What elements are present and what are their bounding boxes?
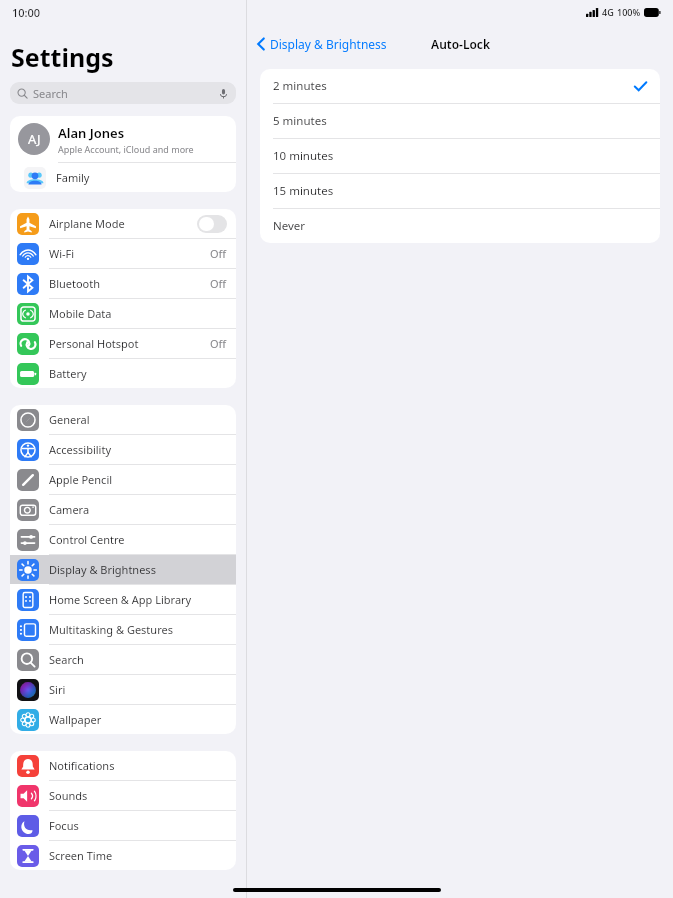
button[interactable]: Search	[10, 645, 236, 674]
button[interactable]: Notifications	[10, 751, 236, 780]
staticText: Apple Pencil	[49, 472, 113, 487]
button[interactable]: Personal Hotspot	[10, 329, 236, 358]
button[interactable]: Screen Time	[10, 841, 236, 870]
button[interactable]: AJ	[10, 116, 236, 162]
button[interactable]: Display & Brightness	[247, 32, 393, 56]
staticText: 4G	[602, 6, 614, 18]
button[interactable]: Focus	[10, 811, 236, 840]
button[interactable]: Siri	[10, 675, 236, 704]
staticText: Mobile Data	[49, 306, 112, 321]
staticText: Multitasking & Gestures	[49, 622, 173, 637]
staticText: Off	[210, 276, 227, 291]
button[interactable]: Home Screen & App Library	[10, 585, 236, 614]
button[interactable]: Airplane Mode	[10, 209, 236, 238]
staticText: Alan Jones	[58, 124, 125, 142]
button[interactable]: Mobile Data	[10, 299, 236, 328]
staticText: Wi-Fi	[49, 246, 75, 261]
button[interactable]: Multitasking & Gestures	[10, 615, 236, 644]
staticText: Siri	[49, 682, 66, 697]
staticText: Focus	[49, 818, 79, 833]
staticText: Camera	[49, 502, 90, 517]
staticText: Personal Hotspot	[49, 336, 139, 351]
button[interactable]: Sounds	[10, 781, 236, 810]
staticText: Battery	[49, 366, 87, 381]
staticText: General	[49, 412, 90, 427]
staticText: 15 minutes	[273, 183, 334, 199]
staticText: 100%	[617, 6, 641, 18]
button[interactable]: Display & Brightness	[10, 555, 236, 584]
staticText: AJ	[28, 130, 41, 148]
staticText: Settings	[11, 40, 114, 74]
button[interactable]: Control Centre	[10, 525, 236, 554]
button[interactable]: Wallpaper	[10, 705, 236, 734]
staticText: 10 minutes	[273, 148, 334, 164]
staticText: Search	[33, 86, 68, 101]
other: Voice search	[218, 88, 229, 99]
button[interactable]: Wi-Fi	[10, 239, 236, 268]
staticText: Home Screen & App Library	[49, 592, 192, 607]
button[interactable]: Camera	[10, 495, 236, 524]
staticText: Display & Brightness	[49, 562, 156, 577]
button[interactable]: 2 minutes	[260, 69, 660, 103]
button[interactable]: 5 minutes	[260, 104, 660, 138]
staticText: 10:00	[12, 5, 41, 20]
button[interactable]: General	[10, 405, 236, 434]
staticText: Control Centre	[49, 532, 125, 547]
button[interactable]: Apple Pencil	[10, 465, 236, 494]
staticText: Display & Brightness	[270, 36, 387, 52]
staticText: Accessibility	[49, 442, 112, 457]
button[interactable]: Battery	[10, 359, 236, 388]
staticText: Family	[56, 170, 90, 185]
button[interactable]: Accessibility	[10, 435, 236, 464]
button[interactable]: 15 minutes	[260, 174, 660, 208]
staticText: Auto-Lock	[431, 36, 490, 52]
button[interactable]: Family	[10, 163, 236, 192]
staticText: 5 minutes	[273, 113, 327, 129]
staticText: Off	[210, 336, 227, 351]
staticText: Apple Account, iCloud and more	[58, 143, 194, 155]
staticText: Bluetooth	[49, 276, 101, 291]
staticText: Wallpaper	[49, 712, 102, 727]
staticText: Airplane Mode	[49, 216, 125, 231]
button[interactable]: 10 minutes	[260, 139, 660, 173]
staticText: Sounds	[49, 788, 88, 803]
staticText: Search	[49, 652, 84, 667]
staticText: Never	[273, 218, 306, 234]
staticText: Notifications	[49, 758, 115, 773]
button[interactable]: Search	[10, 82, 236, 104]
staticText: Off	[210, 246, 227, 261]
staticText: Screen Time	[49, 848, 113, 863]
button[interactable]: Never	[260, 209, 660, 243]
staticText: 2 minutes	[273, 78, 327, 94]
button[interactable]: Bluetooth	[10, 269, 236, 298]
